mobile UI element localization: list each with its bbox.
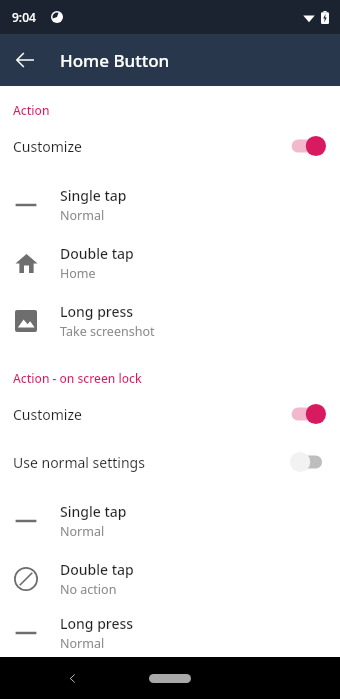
staticText: Double tap xyxy=(60,560,134,579)
staticText: Long press xyxy=(60,614,134,633)
staticText: Take screenshot xyxy=(60,323,155,340)
button[interactable]: Back xyxy=(58,664,86,692)
staticText: 9:04 xyxy=(12,9,36,25)
button[interactable]: Customize xyxy=(0,390,340,438)
staticText: Action - on screen lock xyxy=(13,370,142,386)
button[interactable]: Single tap xyxy=(0,176,340,234)
staticText: Normal xyxy=(60,207,105,224)
staticText: Action xyxy=(13,102,50,118)
staticText: Home xyxy=(60,265,96,282)
staticText: Single tap xyxy=(60,502,127,521)
staticText: Long press xyxy=(60,302,134,321)
staticText: Normal xyxy=(60,523,105,540)
button[interactable]: Customize xyxy=(0,122,340,170)
staticText: Single tap xyxy=(60,186,127,205)
staticText: Customize xyxy=(13,137,289,156)
button[interactable]: Long press xyxy=(0,292,340,350)
button[interactable]: Double tap xyxy=(0,550,340,608)
button[interactable]: Use normal settings xyxy=(0,438,340,486)
staticText: Use normal settings xyxy=(13,453,289,472)
button[interactable]: Double tap xyxy=(0,234,340,292)
staticText: Normal xyxy=(60,635,105,652)
button[interactable]: Single tap xyxy=(0,492,340,550)
staticText: Home Button xyxy=(60,49,170,72)
button[interactable]: Long press xyxy=(0,608,340,657)
button[interactable]: Home xyxy=(149,674,191,683)
staticText: Double tap xyxy=(60,244,134,263)
staticText: No action xyxy=(60,581,117,598)
staticText: Customize xyxy=(13,405,289,424)
button[interactable]: Navigate up xyxy=(4,39,46,81)
